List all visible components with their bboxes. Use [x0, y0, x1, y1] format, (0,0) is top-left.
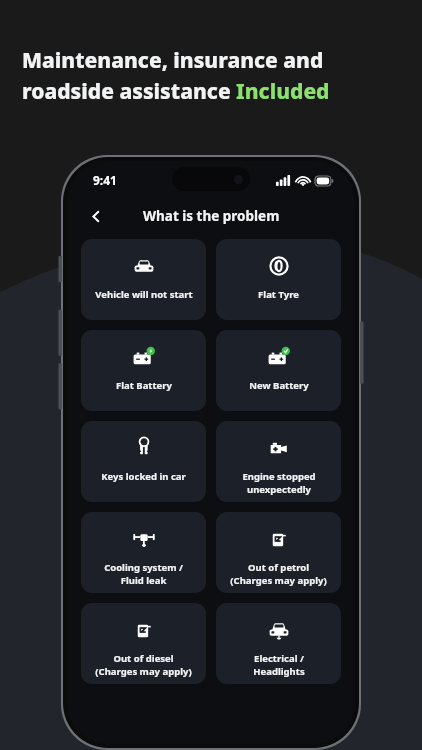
staticText: New Battery: [249, 379, 309, 392]
staticText: Electrical / Headlights: [253, 652, 305, 678]
button[interactable]: New Battery: [216, 330, 341, 411]
button[interactable]: Vehicle will not start: [81, 239, 206, 320]
button[interactable]: Out of petrol (Charges may apply): [216, 512, 341, 593]
button[interactable]: Electrical / Headlights: [216, 603, 341, 684]
staticText: Engine stopped unexpectedly: [242, 470, 316, 496]
button[interactable]: Engine stopped unexpectedly: [216, 421, 341, 502]
staticText: Vehicle will not start: [95, 288, 193, 301]
staticText: Maintenance, insurance and roadside assi…: [22, 46, 330, 105]
staticText: Flat Tyre: [258, 288, 299, 301]
button[interactable]: Back: [81, 201, 111, 231]
staticText: 9:41: [93, 172, 117, 188]
staticText: Flat Battery: [116, 379, 172, 392]
staticText: Out of diesel (Charges may apply): [95, 652, 192, 678]
staticText: Keys locked in car: [101, 470, 186, 483]
staticText: Out of petrol (Charges may apply): [230, 561, 327, 587]
staticText: What is the problem: [143, 207, 280, 225]
button[interactable]: Out of diesel (Charges may apply): [81, 603, 206, 684]
button[interactable]: Flat Tyre: [216, 239, 341, 320]
button[interactable]: Cooling system / Fluid leak: [81, 512, 206, 593]
staticText: Cooling system / Fluid leak: [104, 561, 183, 587]
button[interactable]: Flat Battery: [81, 330, 206, 411]
button[interactable]: Keys locked in car: [81, 421, 206, 502]
